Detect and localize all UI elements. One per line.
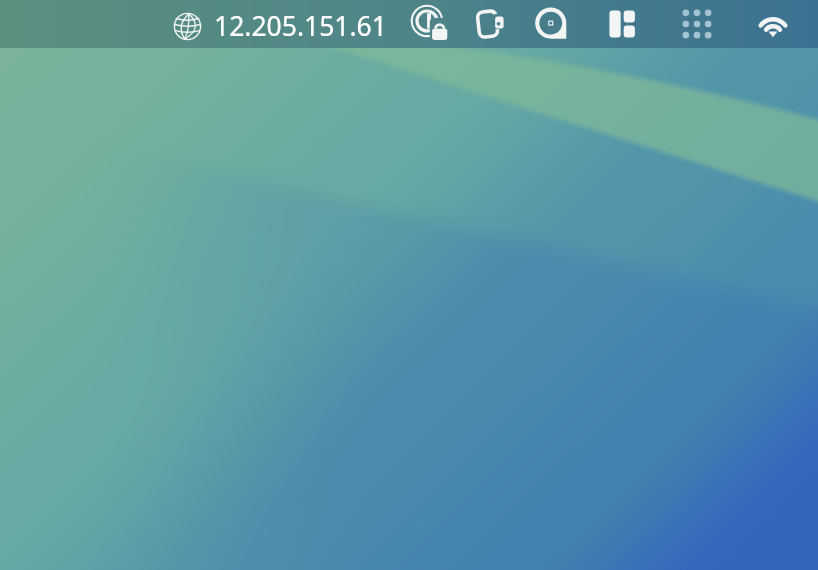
button[interactable]: Wi-Fi <box>749 0 797 48</box>
staticText: 12.205.151.61 <box>214 8 387 44</box>
button[interactable]: Screen Mirroring <box>467 0 515 48</box>
button[interactable]: 12.205.151.61 <box>169 6 391 46</box>
button[interactable]: Control Center <box>598 0 646 48</box>
button[interactable]: Screen Time <box>406 0 454 48</box>
button[interactable]: Siri <box>528 0 576 48</box>
button[interactable]: Apps <box>673 0 721 48</box>
